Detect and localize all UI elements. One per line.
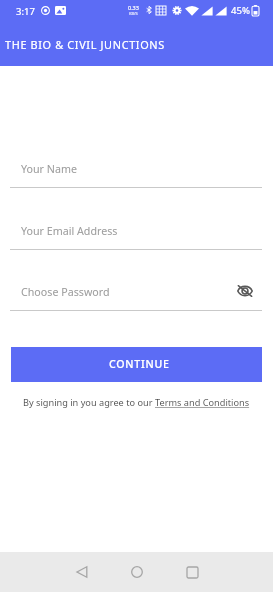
other: Home xyxy=(131,566,143,578)
staticText: 45% xyxy=(231,4,250,17)
staticText: 0.33 xyxy=(128,4,139,11)
staticText: Your Email Address xyxy=(21,224,118,239)
button[interactable]: CONTINUE xyxy=(11,347,262,382)
staticText: THE BIO & CIVIL JUNCTIONS xyxy=(5,37,165,52)
other: Back xyxy=(76,566,88,578)
staticText: CONTINUE xyxy=(109,357,170,371)
staticText: 3:17 xyxy=(16,5,35,18)
button[interactable]: Recents xyxy=(170,552,214,592)
staticText: Choose Password xyxy=(21,285,110,300)
staticText: Your Name xyxy=(21,162,77,177)
other: Recents xyxy=(187,567,198,578)
button[interactable]: Back xyxy=(60,552,104,592)
staticText: KB/S xyxy=(129,11,138,16)
button[interactable]: Toggle password visibility xyxy=(234,280,255,301)
button[interactable]: Terms and Conditions xyxy=(155,396,250,409)
button[interactable]: Home xyxy=(115,552,159,592)
staticText: By signing in you agree to our xyxy=(23,396,155,409)
